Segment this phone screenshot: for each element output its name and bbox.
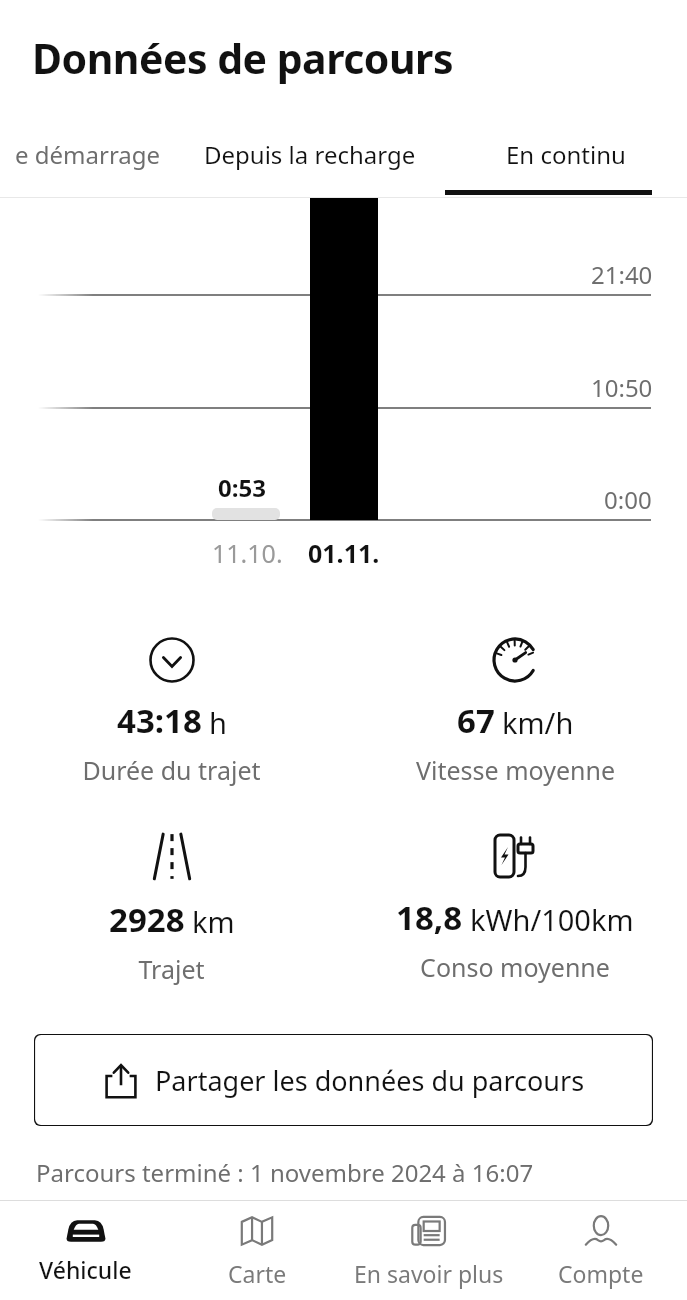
staticText: 18,8 bbox=[396, 895, 463, 940]
staticText: 67 bbox=[457, 698, 495, 743]
button[interactable]: Depuis la recharge bbox=[175, 128, 445, 198]
staticText: Carte bbox=[228, 1258, 287, 1289]
button[interactable]: Partager les données du parcours bbox=[34, 1034, 653, 1126]
button[interactable]: Carte bbox=[171, 1200, 343, 1300]
other: Vitesse bbox=[491, 636, 539, 684]
button[interactable]: En continu bbox=[445, 128, 687, 198]
staticText: En savoir plus bbox=[354, 1258, 504, 1289]
staticText: Durée du trajet bbox=[82, 753, 261, 787]
staticText: Vitesse moyenne bbox=[416, 753, 615, 787]
button[interactable]: En savoir plus bbox=[343, 1200, 515, 1300]
staticText: Véhicule bbox=[39, 1254, 132, 1285]
staticText: h bbox=[209, 703, 227, 742]
staticText: km/h bbox=[502, 703, 574, 742]
staticText: 21:40 bbox=[591, 258, 653, 291]
staticText: En continu bbox=[506, 138, 626, 171]
staticText: Conso moyenne bbox=[420, 950, 610, 984]
staticText: Partager les données du parcours bbox=[155, 1062, 585, 1099]
button[interactable]: Trajet bbox=[0, 831, 343, 986]
staticText: kWh/100km bbox=[470, 900, 634, 939]
other: Trajet bbox=[146, 831, 198, 883]
other: Consommation bbox=[490, 831, 540, 881]
staticText: 01.11. bbox=[308, 536, 380, 570]
staticText: Données de parcours bbox=[32, 30, 453, 86]
button[interactable]: Véhicule bbox=[0, 1200, 171, 1300]
button[interactable]: e démarrage bbox=[0, 128, 175, 198]
staticText: 10:50 bbox=[591, 371, 653, 404]
button[interactable]: Consommation bbox=[343, 831, 687, 984]
staticText: Trajet bbox=[138, 952, 205, 986]
button[interactable]: Durée bbox=[0, 636, 343, 787]
staticText: Depuis la recharge bbox=[204, 138, 416, 171]
button[interactable]: Vitesse bbox=[343, 636, 687, 787]
staticText: Parcours terminé : 1 novembre 2024 à 16:… bbox=[36, 1156, 534, 1189]
button[interactable]: Compte bbox=[515, 1200, 687, 1300]
staticText: Compte bbox=[558, 1258, 644, 1289]
staticText: 43:18 bbox=[117, 698, 202, 743]
staticText: 0:00 bbox=[604, 483, 652, 516]
staticText: 2928 bbox=[109, 897, 185, 942]
staticText: 11.10. bbox=[212, 536, 283, 570]
staticText: km bbox=[192, 902, 235, 941]
staticText: e démarrage bbox=[15, 138, 161, 171]
other: Durée bbox=[148, 636, 196, 684]
staticText: 0:53 bbox=[218, 471, 266, 504]
